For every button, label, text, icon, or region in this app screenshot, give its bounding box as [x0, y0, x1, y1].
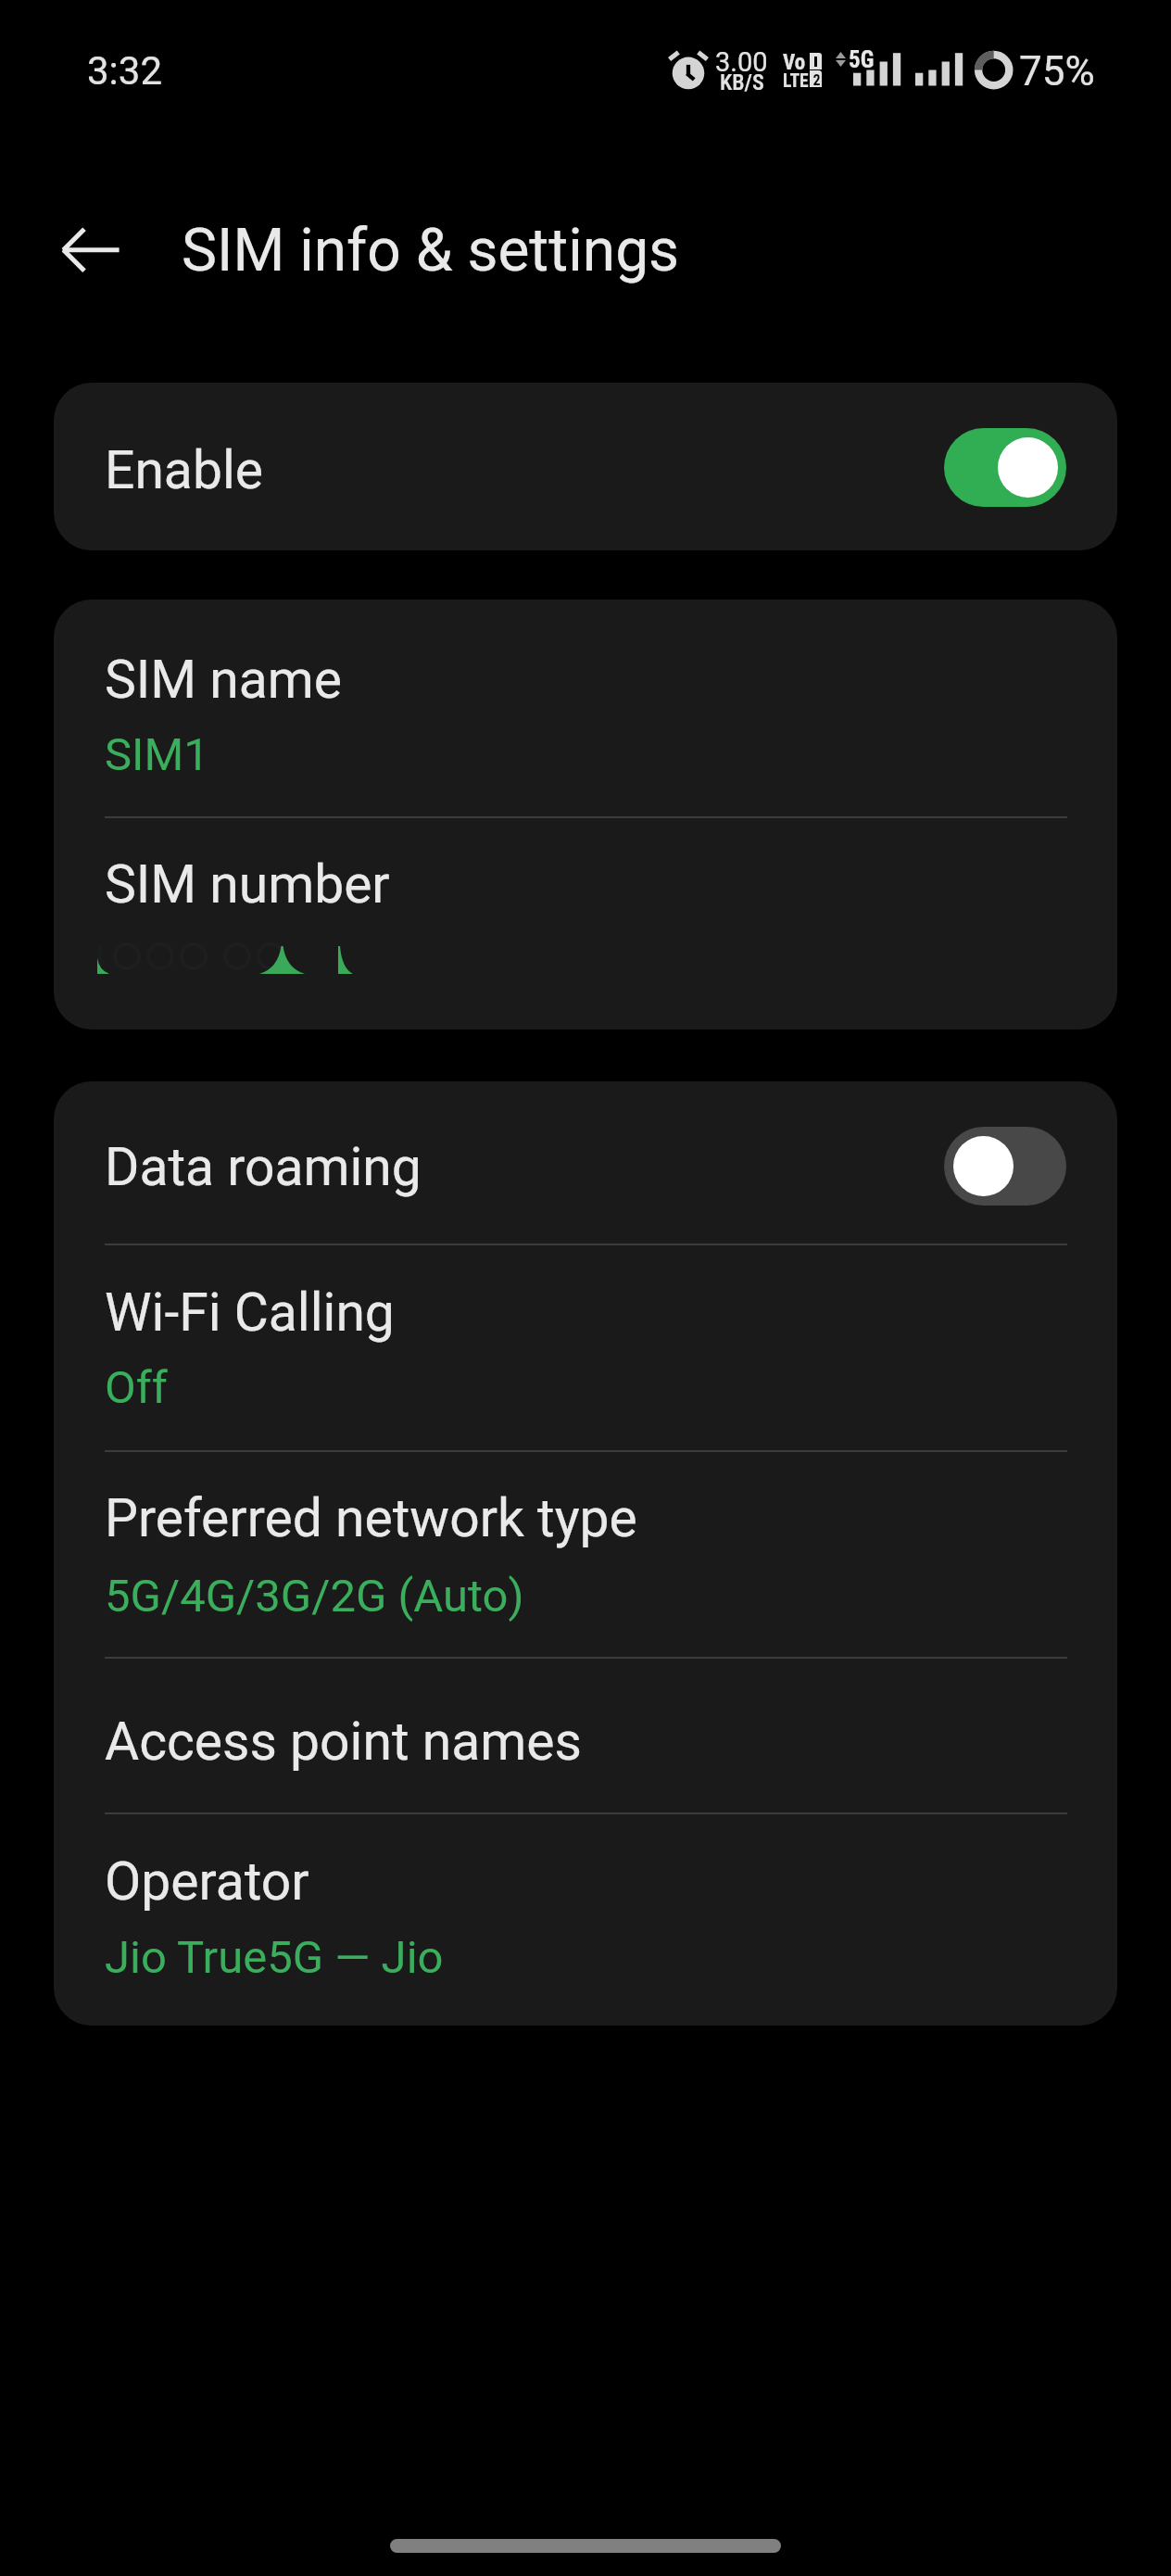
staticText: Vo: [783, 50, 806, 75]
staticText: Wi-Fi Calling: [105, 1282, 395, 1344]
staticText: LTE: [783, 70, 809, 92]
staticText: Enable: [105, 439, 263, 501]
button[interactable]: [54, 1813, 1117, 2026]
button[interactable]: [54, 1451, 1117, 1654]
staticText: Access point names: [105, 1711, 582, 1773]
staticText: 5G/4G/3G/2G (Auto): [105, 1570, 524, 1623]
staticText: 75%: [1019, 47, 1095, 95]
button[interactable]: [54, 600, 1117, 815]
staticText: SIM name: [105, 649, 342, 711]
staticText: Jio True5G — Jio: [105, 1931, 444, 1984]
staticText: SIM1: [105, 728, 209, 781]
staticText: Preferred network type: [105, 1487, 637, 1549]
button[interactable]: [54, 1081, 1117, 1244]
button[interactable]: [54, 1656, 1117, 1812]
button[interactable]: [54, 383, 1117, 550]
staticText: 5G: [849, 46, 875, 73]
staticText: SIM info & settings: [182, 216, 680, 285]
button[interactable]: [54, 816, 1117, 1029]
staticText: SIM number: [105, 853, 390, 915]
staticText: 3:32: [87, 48, 162, 94]
staticText: 2: [812, 71, 821, 87]
button[interactable]: Back: [46, 208, 132, 293]
button[interactable]: Enable SIM: [944, 428, 1066, 507]
staticText: KB/S: [720, 69, 764, 95]
staticText: Data roaming: [105, 1136, 422, 1198]
staticText: Operator: [105, 1850, 309, 1913]
button[interactable]: Data roaming: [944, 1127, 1066, 1206]
staticText: 3.00: [715, 46, 768, 78]
staticText: Off: [105, 1361, 168, 1414]
button[interactable]: [54, 1244, 1117, 1449]
